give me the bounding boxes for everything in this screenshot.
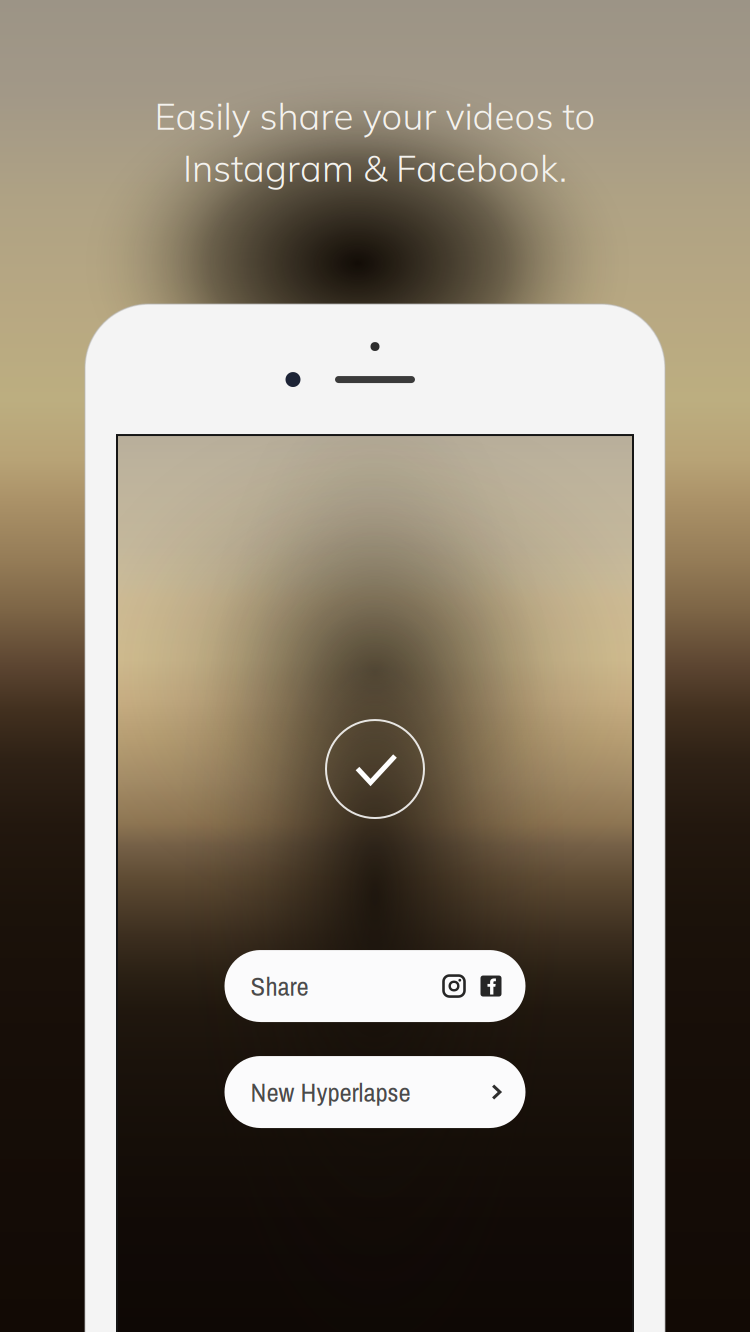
button[interactable]: Share (224, 950, 525, 1022)
staticText: New Hyperlapse (250, 1074, 410, 1110)
staticText: Share (250, 968, 308, 1004)
staticText: Instagram & Facebook. (183, 145, 567, 191)
button[interactable]: New Hyperlapse (224, 1056, 525, 1128)
staticText: Easily share your videos to (154, 93, 595, 139)
